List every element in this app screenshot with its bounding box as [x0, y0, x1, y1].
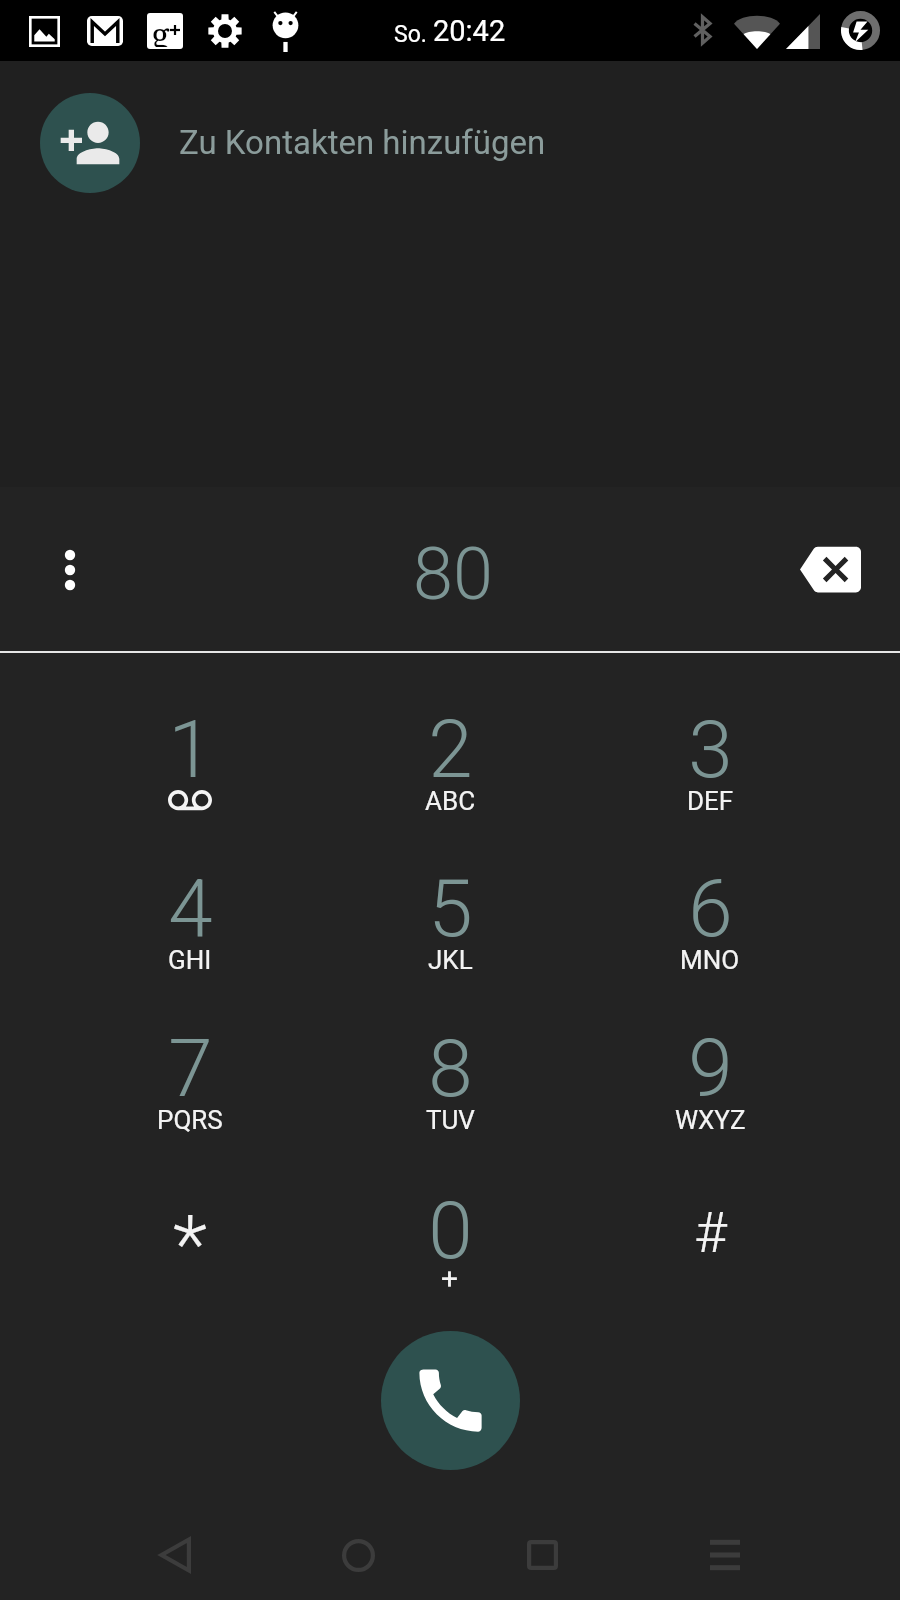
- staticText: So.: [394, 21, 427, 48]
- staticText: 80: [413, 532, 493, 616]
- button[interactable]: More options: [20, 520, 120, 620]
- staticText: 4: [168, 862, 213, 956]
- staticText: 3: [688, 703, 733, 797]
- staticText: 9: [688, 1022, 733, 1116]
- staticText: Zu Kontakten hinzufügen: [179, 123, 546, 162]
- button[interactable]: Backspace: [780, 519, 880, 619]
- button[interactable]: Home: [313, 1510, 403, 1600]
- staticText: 5: [428, 862, 473, 956]
- button[interactable]: 3: [580, 703, 840, 863]
- staticText: DEF: [687, 786, 734, 816]
- button[interactable]: 1: [60, 703, 320, 863]
- staticText: 1: [168, 703, 213, 797]
- staticText: 6: [688, 862, 733, 956]
- button[interactable]: 4: [60, 862, 320, 1022]
- button[interactable]: Zu Kontakten hinzufügen: [0, 93, 900, 193]
- staticText: GHI: [168, 945, 212, 975]
- button[interactable]: 5: [320, 862, 580, 1022]
- staticText: ABC: [425, 786, 476, 816]
- button[interactable]: 6: [580, 862, 840, 1022]
- button[interactable]: *: [60, 1184, 320, 1344]
- button[interactable]: 8: [320, 1022, 580, 1182]
- button[interactable]: #: [580, 1184, 840, 1344]
- button[interactable]: Back: [130, 1510, 220, 1600]
- staticText: 20:42: [433, 14, 506, 48]
- staticText: 8: [428, 1022, 473, 1116]
- staticText: PQRS: [157, 1105, 223, 1135]
- staticText: #: [694, 1200, 727, 1266]
- button[interactable]: Menu: [680, 1510, 770, 1600]
- staticText: 7: [168, 1022, 213, 1116]
- button[interactable]: 9: [580, 1022, 840, 1182]
- staticText: g: [151, 13, 170, 47]
- staticText: *: [173, 1198, 207, 1292]
- staticText: 0: [428, 1184, 473, 1278]
- button[interactable]: 7: [60, 1022, 320, 1182]
- staticText: TUV: [426, 1105, 475, 1135]
- staticText: +: [441, 1261, 459, 1296]
- staticText: MNO: [680, 945, 740, 975]
- button[interactable]: 2: [320, 703, 580, 863]
- staticText: JKL: [428, 945, 473, 975]
- button[interactable]: Call: [381, 1331, 520, 1470]
- staticText: WXYZ: [675, 1105, 746, 1135]
- button[interactable]: 0: [320, 1184, 580, 1344]
- staticText: 2: [428, 703, 473, 797]
- button[interactable]: Recent apps: [497, 1510, 587, 1600]
